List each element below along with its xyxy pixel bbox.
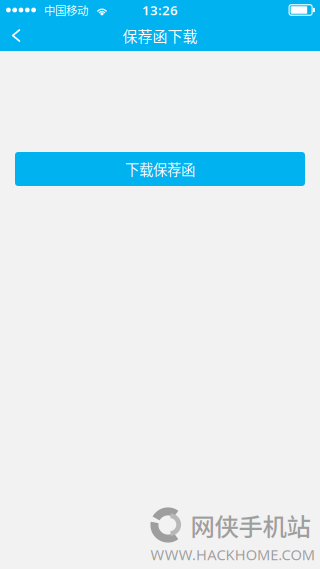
staticText: 网侠手机站 — [190, 507, 310, 543]
staticText: WWW.HACKHOME.COM — [150, 545, 315, 564]
staticText: 13:26 — [142, 1, 178, 19]
staticText: 中国移动 — [44, 2, 88, 18]
staticText: 下载保荐函 — [125, 159, 195, 179]
button[interactable]: Back — [0, 20, 32, 51]
staticText: 保荐函下载 — [122, 25, 197, 46]
button[interactable]: 下载保荐函 — [15, 152, 305, 186]
